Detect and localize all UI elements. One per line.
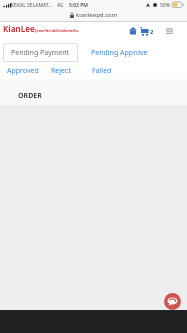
staticText: Pending Approve [91,48,148,58]
button[interactable]: Reject [51,66,71,76]
staticText: Jewellers&Goldsmiths [35,28,79,33]
button[interactable]: kianleepd.com [70,11,118,19]
staticText: Reject [51,66,71,76]
button[interactable] [164,293,181,310]
staticText: kianleepd.com [76,11,118,19]
staticText: Failed [92,66,112,76]
staticText: ORDER [18,91,42,101]
staticText: 5:03 PM [69,2,88,9]
staticText: KianLee [3,23,35,34]
staticText: KEKAL SELAMAT... [11,2,53,9]
button[interactable]: Pending Payment [3,43,78,62]
button[interactable] [128,26,138,36]
staticText: 2 [150,28,154,36]
button[interactable] [165,27,173,35]
staticText: Pending Payment [11,48,70,57]
staticText: Approved [7,66,39,76]
staticText: 50% [160,2,170,9]
button[interactable]: 2 [140,27,154,36]
button[interactable]: Approved [7,66,39,76]
button[interactable]: Pending Approve [91,48,148,58]
button[interactable]: Failed [92,66,112,76]
staticText: 4G [57,2,64,9]
